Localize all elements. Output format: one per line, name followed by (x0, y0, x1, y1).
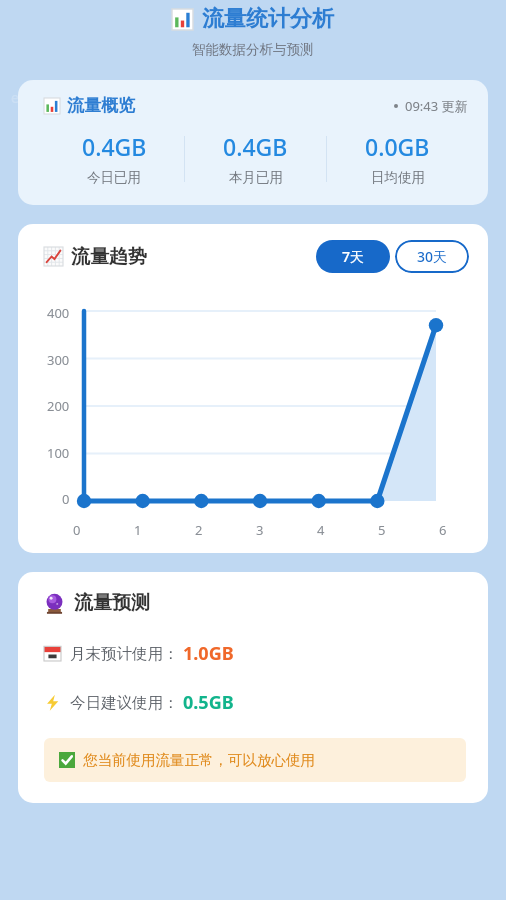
staticText: 智能数据分析与预测 (192, 41, 314, 58)
staticText: 日均使用 (371, 169, 425, 186)
staticText: 1 (134, 521, 142, 539)
button[interactable]: 0.0GB (327, 131, 468, 186)
staticText: 6 (439, 521, 447, 539)
staticText: 您当前使用流量正常，可以放心使用 (83, 751, 315, 769)
staticText: 30天 (417, 247, 448, 266)
button[interactable]: 0.4GB (44, 131, 184, 186)
staticText: e6835b (11, 88, 60, 107)
staticText: 0.4GB (82, 131, 147, 162)
staticText: 流量趋势 (71, 245, 147, 269)
other: Status OK (59, 752, 75, 768)
staticText: 100 (47, 444, 70, 462)
staticText: 0 (73, 521, 81, 539)
button[interactable]: Status OK (44, 738, 466, 782)
button[interactable]: 30天 (395, 240, 469, 273)
staticText: 流量统计分析 (202, 5, 334, 33)
staticText: 7天 (342, 247, 365, 266)
staticText: 流量概览 (67, 95, 135, 116)
staticText: 0.0GB (365, 131, 430, 162)
button[interactable]: 7天 (316, 240, 390, 273)
staticText: 0.5GB (183, 690, 234, 715)
staticText: 09:43 更新 (405, 97, 468, 115)
staticText: 本月已用 (229, 169, 283, 186)
button[interactable]: 0.4GB (185, 131, 326, 186)
staticText: 400 (47, 304, 70, 322)
staticText: 200 (47, 397, 70, 415)
staticText: 2 (195, 521, 203, 539)
staticText: 今日建议使用： (70, 693, 179, 713)
staticText: 月末预计使用： (70, 644, 179, 664)
staticText: 300 (47, 351, 70, 369)
staticText: 5 (378, 521, 386, 539)
button[interactable]: 流量概览 (18, 80, 488, 205)
staticText: 4 (317, 521, 325, 539)
staticText: 0.4GB (223, 131, 288, 162)
staticText: 流量预测 (74, 591, 150, 615)
staticText: 3 (256, 521, 264, 539)
staticText: 0 (62, 490, 70, 508)
staticText: 1.0GB (183, 641, 234, 666)
staticText: 今日已用 (87, 169, 141, 186)
